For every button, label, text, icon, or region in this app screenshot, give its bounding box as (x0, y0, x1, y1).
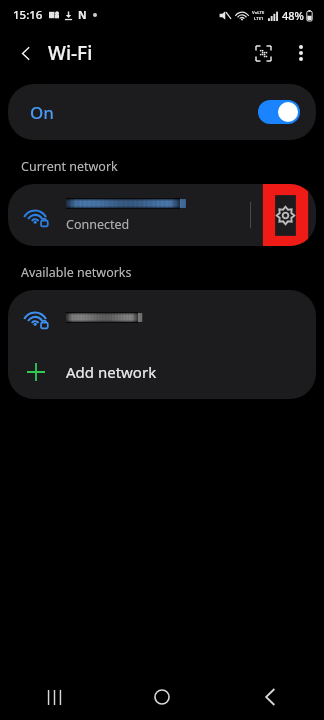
button[interactable]: Scan QR code (244, 34, 282, 72)
staticText: 15:16 (13, 7, 43, 23)
button[interactable]: Back (216, 674, 324, 720)
button[interactable]: On (8, 84, 316, 140)
button[interactable]: More options (282, 34, 320, 72)
staticText: Available networks (21, 264, 132, 281)
staticText: Current network (21, 158, 118, 175)
staticText: N (78, 8, 87, 22)
button[interactable]: Wi-Fi on (258, 100, 300, 124)
staticText: 48% (282, 8, 304, 23)
button[interactable]: Home (108, 674, 216, 720)
button[interactable]: Connected (8, 184, 316, 246)
staticText: LTE1 (254, 16, 264, 22)
button[interactable]: Network settings (269, 189, 302, 242)
button[interactable]: Add network (8, 344, 316, 399)
staticText: On (30, 101, 54, 124)
button[interactable]: Recent apps (0, 674, 108, 720)
staticText: Connected (66, 216, 130, 233)
button[interactable] (8, 290, 316, 344)
staticText: Add network (66, 362, 157, 382)
button[interactable]: Navigate up (6, 33, 46, 73)
staticText: Wi-Fi (48, 40, 93, 66)
staticText: VoLTE (252, 10, 265, 16)
